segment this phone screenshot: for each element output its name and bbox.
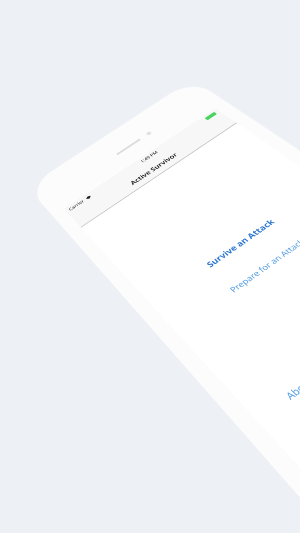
button[interactable]: Survive an Attack <box>197 211 286 276</box>
staticText: Prepare for an Attack <box>227 236 300 295</box>
staticText: Carrier <box>68 198 86 212</box>
staticText: Active Survivor <box>128 151 179 186</box>
button[interactable]: About <box>277 370 300 407</box>
staticText: About <box>282 374 300 402</box>
staticText: 1:49 PM <box>139 150 159 164</box>
staticText: Survive an Attack <box>204 217 278 270</box>
button[interactable]: Prepare for an Attack <box>219 231 300 301</box>
